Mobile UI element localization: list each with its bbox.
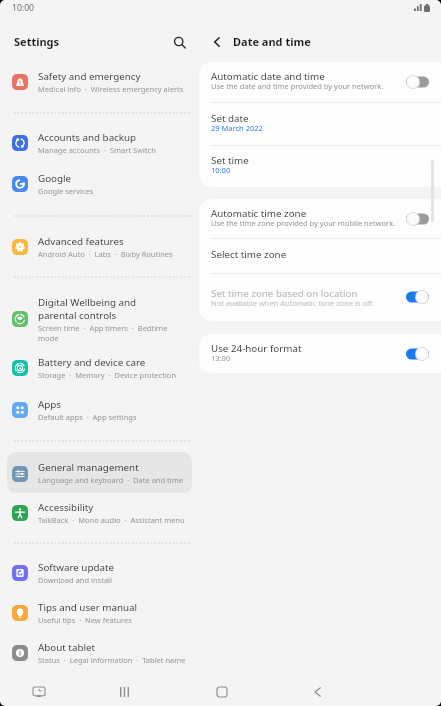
staticText: Accessibility [38, 502, 94, 514]
staticText: Set time zone based on location [211, 288, 358, 299]
staticText: Tips and user manual [38, 602, 138, 614]
staticText: Automatic time zone [211, 208, 307, 219]
button[interactable]: Toggle on [406, 290, 429, 304]
button[interactable]: Set time [199, 145, 441, 187]
staticText: Google [38, 173, 72, 185]
staticText: Use the date and time provided by your n… [211, 82, 384, 91]
staticText: TalkBack · Mono audio · Assistant menu [38, 515, 192, 525]
staticText: Useful tips · New features [38, 615, 192, 625]
button[interactable]: Software update [7, 553, 192, 593]
staticText: Set time [211, 155, 249, 166]
staticText: Set date [211, 113, 249, 124]
staticText: Safety and emergency [38, 71, 141, 83]
button[interactable]: Screen time [26, 679, 51, 704]
button[interactable]: Accounts and backup [7, 123, 192, 163]
staticText: Android Auto · Labs · Bixby Routines [38, 249, 192, 259]
button[interactable]: Home [209, 679, 234, 704]
button[interactable]: Automatic date and time [199, 62, 441, 102]
staticText: 29 March 2022 [211, 124, 263, 133]
button[interactable]: Set date [199, 102, 441, 145]
button[interactable]: Battery and device care [7, 348, 192, 388]
button[interactable]: Back [206, 31, 228, 53]
staticText: Automatic date and time [211, 71, 325, 82]
staticText: Accounts and backup [38, 132, 137, 144]
staticText: Digital Wellbeing and parental controls [38, 296, 173, 322]
staticText: Status · Legal information · Tablet name [38, 655, 192, 665]
button[interactable]: General management [7, 452, 192, 493]
staticText: 13:00 [211, 354, 231, 363]
staticText: 10:00 [211, 166, 231, 175]
button[interactable]: Tips and user manual [7, 593, 192, 633]
button[interactable]: Set time zone based on location [199, 273, 441, 321]
staticText: About tablet [38, 642, 95, 654]
button[interactable]: Toggle off [406, 75, 429, 89]
staticText: Settings [14, 35, 60, 50]
staticText: Medical info · Wireless emergency alerts [38, 84, 192, 94]
button[interactable]: Back [305, 679, 330, 704]
button[interactable]: Search [167, 30, 191, 54]
staticText: Apps [38, 399, 62, 411]
button[interactable]: Accessibility [7, 493, 192, 533]
staticText: Not available when Automatic time zone i… [211, 299, 375, 308]
staticText: Download and install [38, 575, 192, 585]
button[interactable]: Advanced features [7, 227, 192, 267]
button[interactable]: Apps [7, 390, 192, 430]
staticText: Manage accounts · Smart Switch [38, 145, 192, 155]
staticText: Language and keyboard · Date and time [38, 475, 192, 485]
staticText: Battery and device care [38, 357, 146, 369]
button[interactable]: Google [7, 164, 192, 204]
staticText: General management [38, 462, 139, 474]
staticText: Select time zone [211, 249, 287, 260]
button[interactable]: Select time zone [199, 238, 441, 273]
staticText: Software update [38, 562, 114, 574]
button[interactable]: Digital Wellbeing and parental controls [7, 293, 192, 345]
staticText: Date and time [233, 35, 311, 50]
staticText: Use the time zone provided by your mobil… [211, 219, 396, 228]
button[interactable]: Recent apps [112, 679, 137, 704]
staticText: 10:00 [12, 2, 34, 13]
button[interactable]: Automatic time zone [199, 199, 441, 238]
button[interactable]: Toggle on [406, 347, 429, 361]
button[interactable]: Toggle off [406, 212, 429, 226]
staticText: Advanced features [38, 236, 124, 248]
staticText: Storage · Memory · Device protection [38, 370, 192, 380]
button[interactable]: Safety and emergency [7, 62, 192, 102]
button[interactable]: Use 24-hour format [199, 334, 441, 373]
staticText: Screen time · App timers · Bedtime mode [38, 323, 173, 343]
staticText: Google services [38, 186, 192, 196]
button[interactable]: About tablet [7, 633, 192, 673]
staticText: Default apps · App settings [38, 412, 192, 422]
staticText: Use 24-hour format [211, 343, 302, 354]
